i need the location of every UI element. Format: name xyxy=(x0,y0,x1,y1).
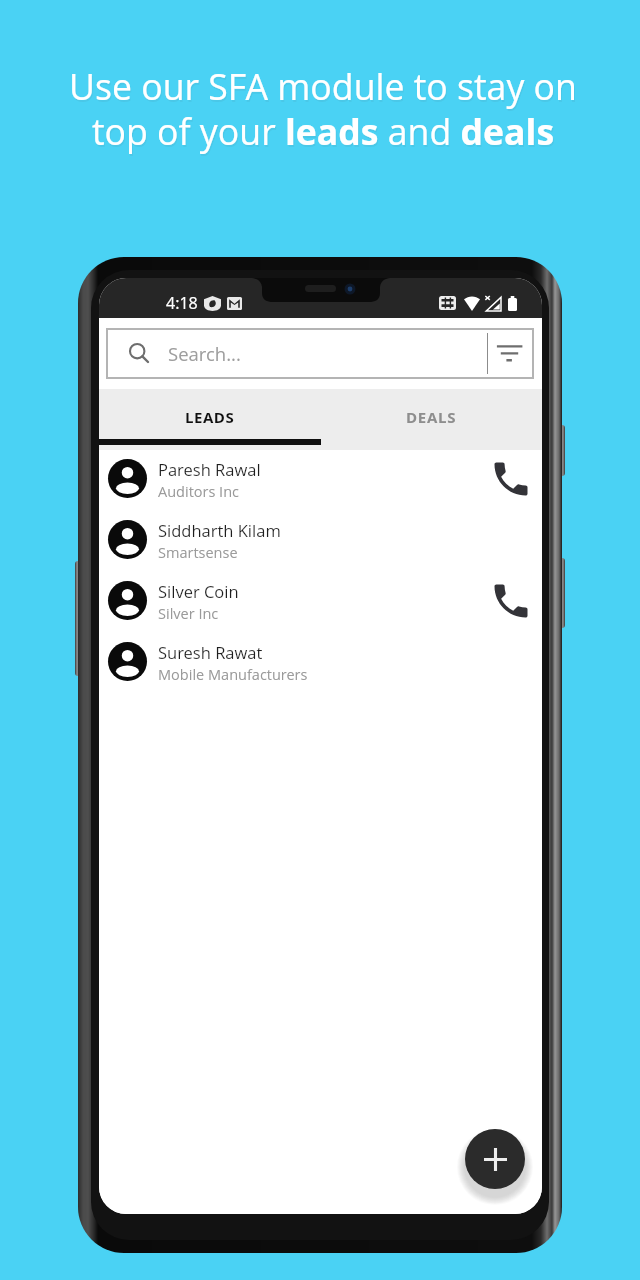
staticText: Smartsense xyxy=(158,543,238,563)
staticText: Search... xyxy=(168,341,241,366)
staticText: 4:18 xyxy=(166,292,198,314)
button[interactable]: DEALS xyxy=(320,389,542,450)
staticText: Silver Inc xyxy=(158,604,219,624)
staticText: Auditors Inc xyxy=(158,482,239,502)
staticText: Use our SFA module to stay on top of you… xyxy=(4,64,640,158)
staticText: Paresh Rawal xyxy=(158,458,261,480)
button[interactable]: Add xyxy=(465,1129,525,1189)
staticText: Siddharth Kilam xyxy=(158,519,281,541)
staticText: Use our SFA module to stay on top of you… xyxy=(3,62,640,156)
button[interactable]: Call xyxy=(487,455,535,503)
staticText: Silver Coin xyxy=(158,580,239,602)
button[interactable]: LEADS xyxy=(99,389,320,450)
button[interactable]: Search... xyxy=(106,328,534,379)
button[interactable]: Paresh Rawal xyxy=(99,448,542,509)
staticText: LEADS xyxy=(185,407,235,427)
button[interactable]: Call xyxy=(487,577,535,625)
button[interactable]: Filter xyxy=(492,328,534,377)
staticText: Suresh Rawat xyxy=(158,641,263,663)
staticText: Mobile Manufacturers xyxy=(158,665,308,685)
button[interactable]: Silver Coin xyxy=(99,570,542,631)
button[interactable]: Suresh Rawat xyxy=(99,631,542,692)
staticText: DEALS xyxy=(406,407,457,427)
button[interactable]: Siddharth Kilam xyxy=(99,509,542,570)
